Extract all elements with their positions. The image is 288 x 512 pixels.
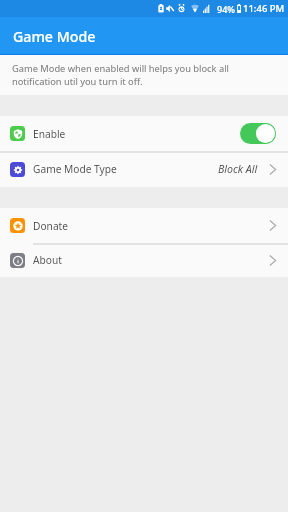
button[interactable]: About bbox=[0, 243, 288, 277]
staticText: Block All bbox=[218, 162, 258, 176]
staticText: Game Mode bbox=[13, 27, 96, 46]
staticText: Game Mode Type bbox=[33, 162, 117, 176]
button[interactable]: Donate bbox=[0, 208, 288, 243]
button[interactable]: Enable bbox=[0, 116, 288, 151]
staticText: Donate bbox=[33, 219, 69, 233]
button[interactable]: Game Mode Type bbox=[0, 151, 288, 187]
button[interactable]: Enable toggle bbox=[240, 123, 276, 144]
staticText: 94% bbox=[217, 3, 235, 15]
staticText: Enable bbox=[33, 127, 66, 141]
staticText: Game Mode when enabled will helps you bl… bbox=[12, 62, 229, 88]
staticText: 11:46 PM bbox=[243, 2, 285, 15]
staticText: About bbox=[33, 253, 62, 267]
